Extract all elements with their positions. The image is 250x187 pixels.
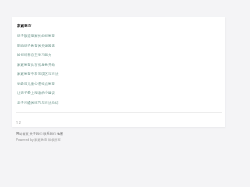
staticText: 影响孩子教育的关键因素: [17, 44, 55, 48]
staticText: 学龄前儿童心理特点教育: [17, 82, 55, 86]
button[interactable]: 亲子沟通的技巧与方法总结: [12, 99, 225, 109]
staticText: 家庭教育中常见误区与方法: [17, 72, 58, 76]
staticText: Powered by 家庭教育 版权所有: [16, 137, 61, 141]
button[interactable]: 学龄前儿童心理特点教育: [12, 80, 225, 90]
staticText: 让孩子爱上阅读的小建议: [17, 91, 55, 95]
staticText: 如何培养自主学习能力: [17, 53, 51, 57]
button[interactable]: 1 2: [16, 120, 45, 148]
button[interactable]: 家庭教育中常见误区与方法: [12, 70, 225, 80]
staticText: 1 2: [16, 120, 21, 125]
staticText: 孩子叛逆期家长如何教育: [17, 34, 55, 38]
staticText: 亲子沟通的技巧与方法总结: [17, 101, 58, 105]
button[interactable]: 让孩子爱上阅读的小建议: [12, 89, 225, 99]
staticText: 家庭教育从言传身教开始: [17, 63, 55, 67]
button[interactable]: 孩子叛逆期家长如何教育: [12, 32, 225, 42]
staticText: 网站首页 关于我们 联系我们 地图: [16, 131, 63, 135]
button[interactable]: 如何培养自主学习能力: [12, 51, 225, 61]
button[interactable]: 影响孩子教育的关键因素: [12, 42, 225, 52]
button[interactable]: 家庭教育从言传身教开始: [12, 61, 225, 71]
staticText: 家庭教育: [17, 23, 31, 27]
